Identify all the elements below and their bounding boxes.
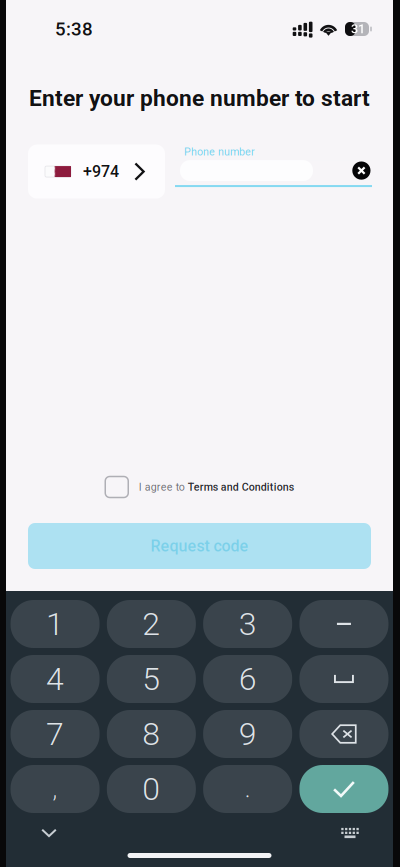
button[interactable]: 7 bbox=[11, 710, 100, 758]
button[interactable]: Clear bbox=[352, 161, 370, 180]
button[interactable]: 4 bbox=[11, 655, 100, 703]
button[interactable]: 5 bbox=[107, 655, 196, 703]
button[interactable]: Dash bbox=[299, 600, 388, 648]
staticText: Request code bbox=[150, 537, 248, 555]
button[interactable]: 1 bbox=[11, 600, 100, 648]
staticText: Enter your phone number to start bbox=[29, 85, 370, 112]
staticText: 6 bbox=[239, 660, 257, 698]
staticText: 3 bbox=[239, 605, 257, 643]
button[interactable]: I agree to bbox=[105, 475, 294, 499]
button[interactable]: 2 bbox=[107, 600, 196, 648]
staticText: 2 bbox=[142, 605, 160, 643]
staticText: . bbox=[245, 775, 251, 803]
button[interactable]: Request code bbox=[28, 523, 371, 569]
staticText: , bbox=[53, 775, 58, 803]
button[interactable]: Switch keyboard bbox=[327, 820, 373, 846]
staticText: 1 bbox=[46, 605, 64, 643]
button[interactable]: . bbox=[203, 765, 292, 813]
button[interactable]: 0 bbox=[107, 765, 196, 813]
button[interactable]: 9 bbox=[203, 710, 292, 758]
button[interactable]: Backspace bbox=[299, 710, 388, 758]
staticText: 5:38 bbox=[55, 18, 93, 40]
staticText: I agree to bbox=[139, 481, 188, 493]
staticText: +974 bbox=[83, 162, 119, 181]
staticText: 0 bbox=[142, 770, 160, 808]
staticText: 7 bbox=[46, 715, 64, 753]
button[interactable]: Hide keyboard bbox=[26, 820, 72, 846]
staticText: 5 bbox=[142, 660, 160, 698]
button[interactable]: Enter bbox=[299, 765, 388, 813]
staticText: 31 bbox=[351, 22, 365, 36]
button[interactable]: 8 bbox=[107, 710, 196, 758]
button[interactable]: 3 bbox=[203, 600, 292, 648]
button[interactable]: +974 bbox=[28, 145, 165, 199]
staticText: 9 bbox=[239, 715, 257, 753]
staticText: 8 bbox=[142, 715, 160, 753]
staticText: 4 bbox=[46, 660, 64, 698]
button[interactable]: 6 bbox=[203, 655, 292, 703]
staticText: Phone number bbox=[184, 146, 255, 158]
staticText: Terms and Conditions bbox=[188, 481, 294, 493]
button[interactable]: Space bbox=[299, 655, 388, 703]
button[interactable]: , bbox=[11, 765, 100, 813]
